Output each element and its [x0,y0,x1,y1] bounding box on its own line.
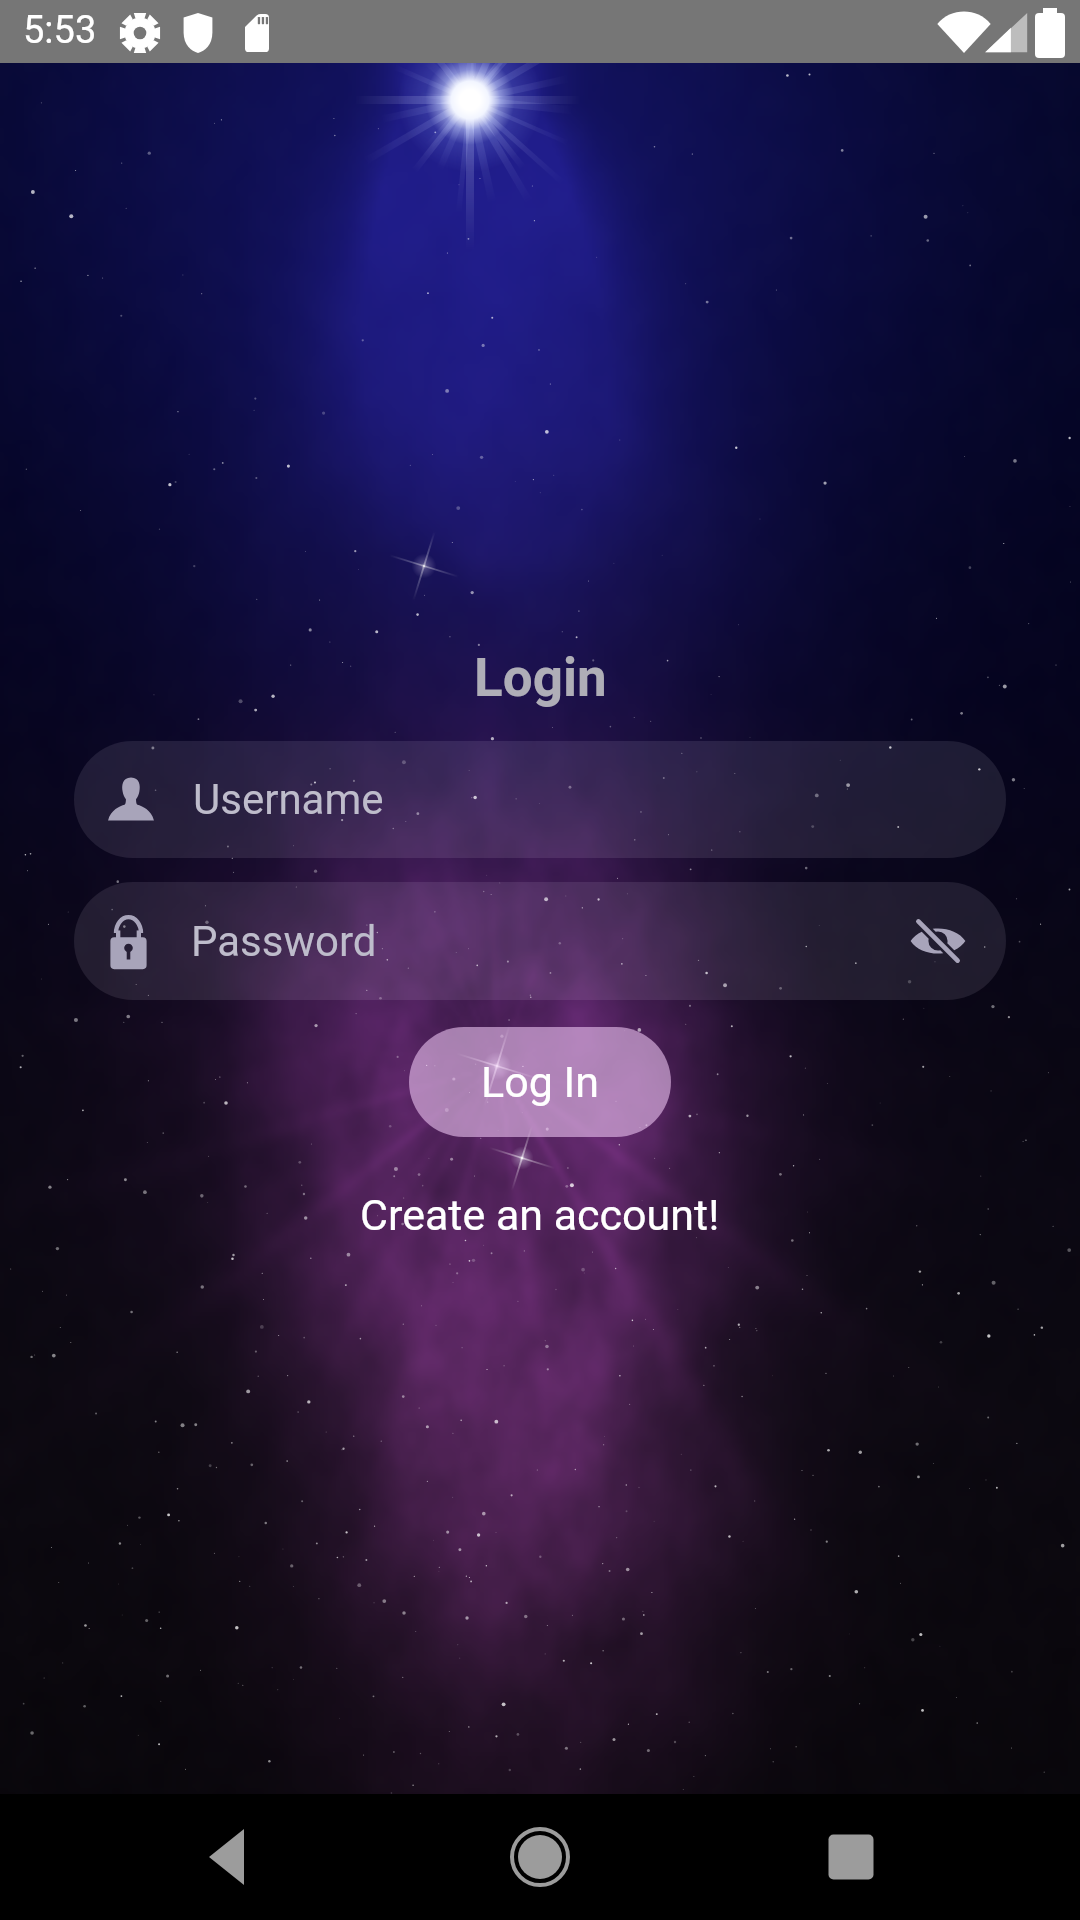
staticText: Login [474,647,607,709]
staticText: Password [191,917,377,966]
button[interactable]: Show password [900,903,976,979]
button[interactable]: Home [450,1794,630,1920]
button[interactable]: Back [137,1794,317,1920]
button[interactable]: Log In [409,1027,671,1137]
button[interactable]: Username [74,741,1006,858]
button[interactable]: Password [74,882,1006,1000]
button[interactable]: Recent apps [761,1794,941,1920]
button[interactable]: Create an account! [350,1186,730,1244]
staticText: Username [193,775,384,824]
staticText: Create an account! [360,1190,720,1240]
staticText: 5:53 [23,8,97,53]
staticText: Log In [481,1057,599,1107]
